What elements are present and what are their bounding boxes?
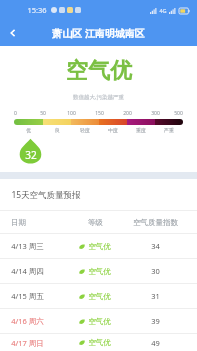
staticText: 空气优 [88,242,111,251]
staticText: 4/16 周六 [11,316,44,326]
staticText: 优 [26,127,31,133]
button[interactable]: 4/16 周六 [0,309,197,333]
staticText: 34 [151,241,160,251]
staticText: 空气质量指数 [133,218,178,227]
staticText: 空气优 [88,317,111,326]
staticText: 中度 [108,127,118,133]
staticText: 49 [151,338,160,348]
staticText: 4/14 周四 [11,266,44,276]
staticText: 150 [95,110,104,117]
staticText: 0 [14,110,17,117]
staticText: 100 [67,110,76,117]
staticText: 重度 [136,127,146,133]
button[interactable]: 4/14 周四 [0,259,197,283]
staticText: 空气优 [88,338,111,347]
button[interactable]: 4/17 周日 [0,334,197,351]
staticText: 31 [151,291,160,301]
staticText: 32 [25,148,37,162]
button[interactable]: 4/13 周三 [0,234,197,258]
button[interactable]: 4/15 周五 [0,284,197,308]
staticText: 500 [174,110,183,117]
staticText: 4/15 周五 [11,291,44,301]
staticText: 良 [55,127,60,133]
staticText: 空气优 [66,57,132,85]
staticText: 轻度 [80,127,90,133]
button[interactable]: Back [0,20,26,46]
staticText: 50 [40,110,46,117]
staticText: 30 [151,266,160,276]
staticText: 4/13 周三 [11,241,44,251]
staticText: 300 [151,110,160,117]
staticText: 日期 [11,218,26,227]
staticText: 等级 [88,218,103,227]
staticText: 39 [151,316,160,326]
staticText: 萧山区 江南明城南区 [52,26,145,40]
staticText: 15:36 [27,5,47,15]
staticText: 空气优 [88,292,111,301]
staticText: 4/17 周日 [11,338,44,348]
staticText: 严重 [164,127,174,133]
staticText: 数值越大,污染越严重 [73,93,124,101]
staticText: 4G [159,7,167,14]
staticText: 15天空气质量预报 [11,189,81,201]
staticText: 200 [123,110,132,117]
staticText: 空气优 [88,267,111,276]
